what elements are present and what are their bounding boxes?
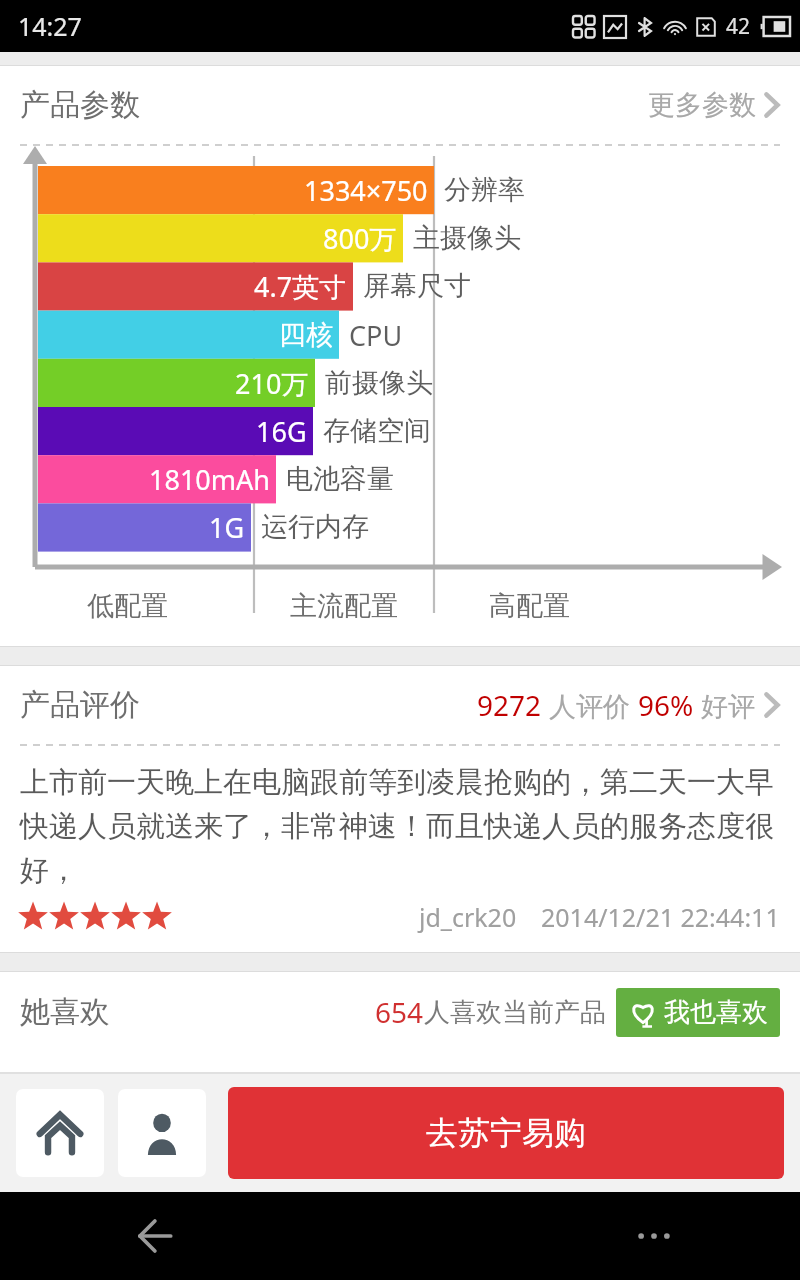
- staticText: 更多参数: [648, 88, 756, 122]
- staticText: 四核: [279, 318, 333, 352]
- staticText: 14:27: [18, 9, 82, 43]
- staticText: 1334×750: [304, 172, 428, 209]
- staticText: 210万: [235, 365, 309, 402]
- button[interactable]: 产品参数: [0, 66, 800, 144]
- staticText: jd_crk20: [419, 900, 517, 934]
- staticText: 800万: [323, 220, 397, 257]
- staticText: 高配置: [489, 589, 570, 623]
- staticText: CPU: [349, 317, 403, 354]
- staticText: 人评价: [542, 687, 638, 724]
- staticText: 产品评价: [20, 686, 140, 724]
- staticText: 上市前一天晚上在电脑跟前等到凌晨抢购的，第二天一大早快递人员就送来了，非常神速！…: [20, 764, 780, 888]
- staticText: 16G: [256, 413, 307, 450]
- staticText: 我也喜欢: [664, 996, 768, 1029]
- staticText: 分辨率: [444, 173, 525, 207]
- staticText: 654: [375, 993, 424, 1031]
- staticText: 电池容量: [286, 462, 394, 496]
- staticText: 运行内存: [261, 510, 369, 544]
- staticText: 她喜欢: [20, 993, 110, 1031]
- button[interactable]: Back: [118, 1200, 190, 1272]
- staticText: 9272: [477, 686, 542, 724]
- button[interactable]: 我也喜欢: [616, 988, 780, 1037]
- staticText: 存储空间: [323, 414, 431, 448]
- staticText: 1G: [209, 509, 245, 546]
- staticText: 主流配置: [290, 589, 398, 623]
- staticText: 1810mAh: [149, 461, 270, 498]
- staticText: 主摄像头: [413, 221, 521, 255]
- staticText: 屏幕尺寸: [363, 269, 471, 303]
- button[interactable]: 上市前一天晚上在电脑跟前等到凌晨抢购的，第二天一大早快递人员就送来了，非常神速！…: [0, 746, 800, 952]
- button[interactable]: 产品评价: [0, 666, 800, 744]
- staticText: 前摄像头: [325, 366, 433, 400]
- staticText: 96%: [638, 686, 694, 724]
- staticText: 42: [726, 12, 751, 41]
- button[interactable]: More options: [618, 1200, 690, 1272]
- staticText: 人喜欢当前产品: [424, 996, 606, 1029]
- staticText: 去苏宁易购: [426, 1113, 586, 1153]
- staticText: 4.7英寸: [254, 268, 347, 305]
- staticText: 产品参数: [20, 86, 140, 124]
- staticText: 低配置: [87, 589, 168, 623]
- button[interactable]: 去苏宁易购: [228, 1087, 784, 1179]
- button[interactable]: Account: [118, 1089, 206, 1177]
- staticText: 好评: [694, 687, 756, 724]
- button[interactable]: Home: [16, 1089, 104, 1177]
- button[interactable]: 她喜欢: [0, 972, 800, 1052]
- staticText: 2014/12/21 22:44:11: [541, 900, 780, 934]
